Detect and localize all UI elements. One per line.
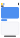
button[interactable]: Back [1,3,4,5]
button[interactable]: Primary action [1,19,7,21]
